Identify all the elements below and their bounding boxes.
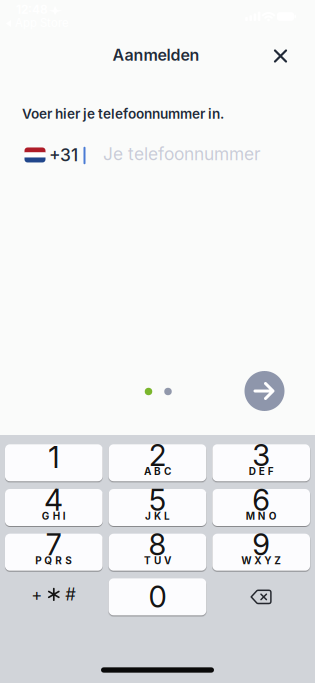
staticText: M N O <box>246 510 277 522</box>
staticText: 4 <box>44 482 63 518</box>
button[interactable]: 5 <box>109 489 206 526</box>
button[interactable]: 3 <box>212 444 310 481</box>
staticText: 5 <box>149 482 166 518</box>
staticText: # <box>65 584 76 604</box>
staticText: D E F <box>249 465 274 477</box>
button[interactable]: 7 <box>5 534 103 571</box>
staticText: 0 <box>148 579 166 615</box>
staticText: T U V <box>144 555 171 567</box>
button[interactable]: Sluiten <box>263 39 297 73</box>
staticText: +31 <box>49 144 78 165</box>
staticText: + <box>31 584 42 604</box>
staticText: 1 <box>48 440 59 475</box>
staticText: 2 <box>149 438 166 473</box>
staticText: 3 <box>252 438 270 473</box>
staticText: 6 <box>252 482 270 518</box>
button[interactable]: Volgende <box>244 371 284 411</box>
staticText: 7 <box>46 527 62 562</box>
button[interactable]: 2 <box>109 444 206 481</box>
staticText: 9 <box>252 527 270 562</box>
staticText: J K L <box>145 510 170 522</box>
staticText: P Q R S <box>35 555 72 567</box>
button[interactable]: Verwijderen <box>212 578 310 615</box>
button[interactable]: 9 <box>212 534 310 571</box>
button[interactable]: Symbolen <box>5 578 103 615</box>
staticText: Aanmelden <box>112 45 199 65</box>
staticText: 8 <box>148 527 166 562</box>
staticText: W X Y Z <box>241 555 281 567</box>
staticText: A B C <box>144 465 171 477</box>
button[interactable]: 6 <box>212 489 310 526</box>
button[interactable]: 0 <box>109 578 206 615</box>
button[interactable]: 1 <box>5 444 103 481</box>
button[interactable]: Landcode +31 <box>24 144 78 165</box>
staticText: Je telefoonnummer <box>103 143 261 164</box>
button[interactable]: Je telefoonnummer <box>103 143 261 164</box>
button[interactable]: 4 <box>5 489 103 526</box>
staticText: Voer hier je telefoonnummer in. <box>22 105 224 122</box>
button[interactable]: 8 <box>109 534 206 571</box>
staticText: G H I <box>42 510 66 522</box>
